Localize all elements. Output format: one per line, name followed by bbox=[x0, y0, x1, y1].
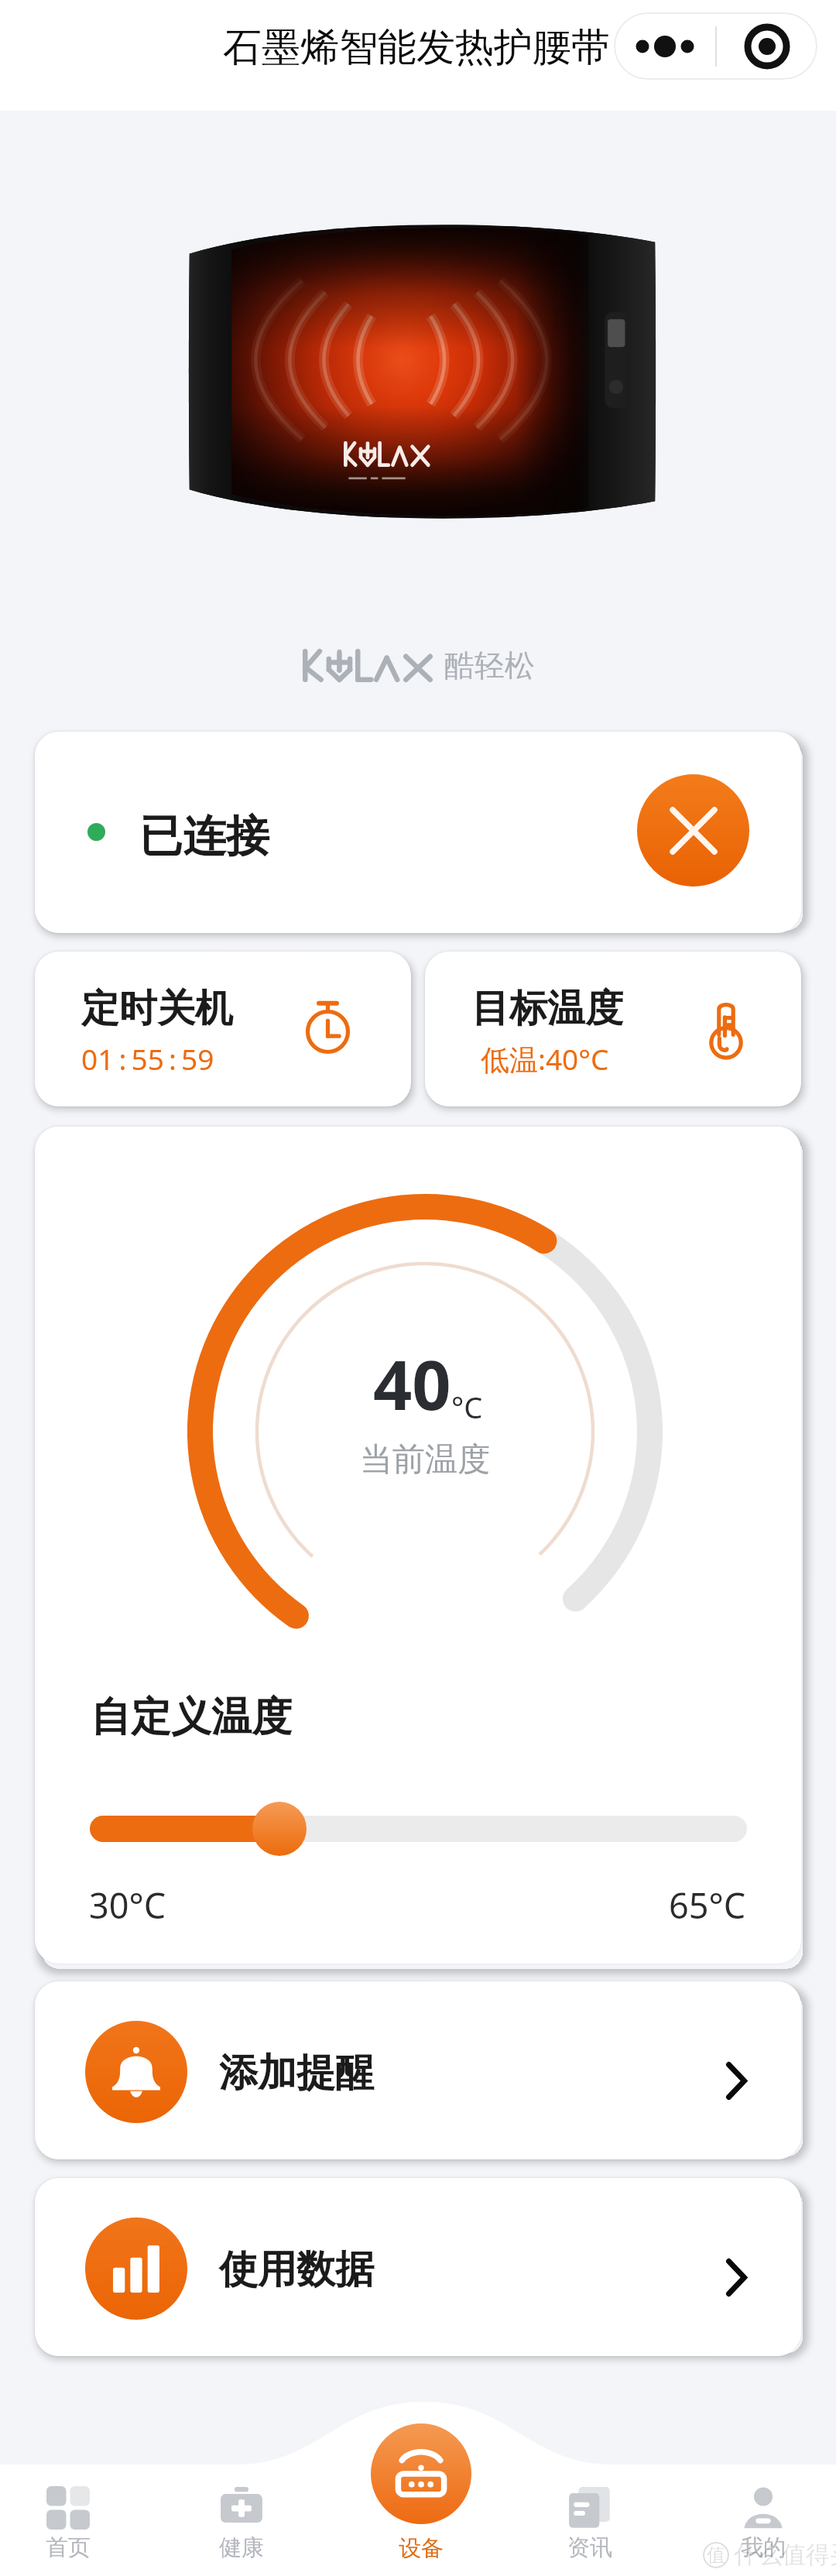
staticText: 40 bbox=[373, 1337, 451, 1430]
staticText: 使用数据 bbox=[219, 2245, 374, 2294]
staticText: 酷轻松 bbox=[444, 647, 535, 684]
staticText: 什么值得买 bbox=[734, 2540, 836, 2570]
staticText: 目标温度 bbox=[471, 985, 623, 1033]
staticText: 定时关机 bbox=[81, 985, 233, 1033]
button[interactable]: 我的 bbox=[709, 2486, 817, 2575]
staticText: 值 bbox=[707, 2543, 725, 2567]
staticText: 65°C bbox=[669, 1881, 746, 1929]
button[interactable]: 添加提醒 bbox=[35, 1981, 801, 2159]
staticText: 01 : 55 : 59 bbox=[81, 1039, 214, 1078]
button[interactable]: 使用数据 bbox=[35, 2178, 801, 2356]
button[interactable]: 目标温度 bbox=[425, 952, 801, 1106]
staticText: 设备 bbox=[399, 2534, 444, 2563]
button[interactable]: 首页 bbox=[14, 2486, 122, 2575]
button[interactable]: 定时关机 bbox=[35, 952, 411, 1106]
staticText: 添加提醒 bbox=[219, 2049, 374, 2098]
staticText: 健康 bbox=[219, 2533, 264, 2562]
staticText: 资讯 bbox=[567, 2533, 612, 2562]
staticText: 石墨烯智能发热护腰带 bbox=[223, 23, 610, 72]
staticText: 30°C bbox=[89, 1881, 166, 1929]
button[interactable]: Custom temperature slider bbox=[252, 1802, 307, 1856]
button[interactable]: Device bbox=[371, 2423, 471, 2524]
staticText: 低温:40°C bbox=[481, 1039, 609, 1079]
button[interactable]: Target bbox=[717, 12, 817, 80]
staticText: 当前温度 bbox=[360, 1439, 490, 1480]
staticText: 已连接 bbox=[139, 809, 269, 864]
button[interactable]: More bbox=[614, 12, 715, 80]
button[interactable]: Disconnect bbox=[637, 774, 749, 887]
button[interactable]: 资讯 bbox=[536, 2486, 644, 2575]
staticText: 自定义温度 bbox=[91, 1692, 292, 1743]
button[interactable]: 健康 bbox=[187, 2486, 296, 2575]
staticText: °C bbox=[451, 1387, 483, 1427]
staticText: 首页 bbox=[46, 2533, 91, 2562]
staticText: 我的 bbox=[741, 2533, 786, 2562]
